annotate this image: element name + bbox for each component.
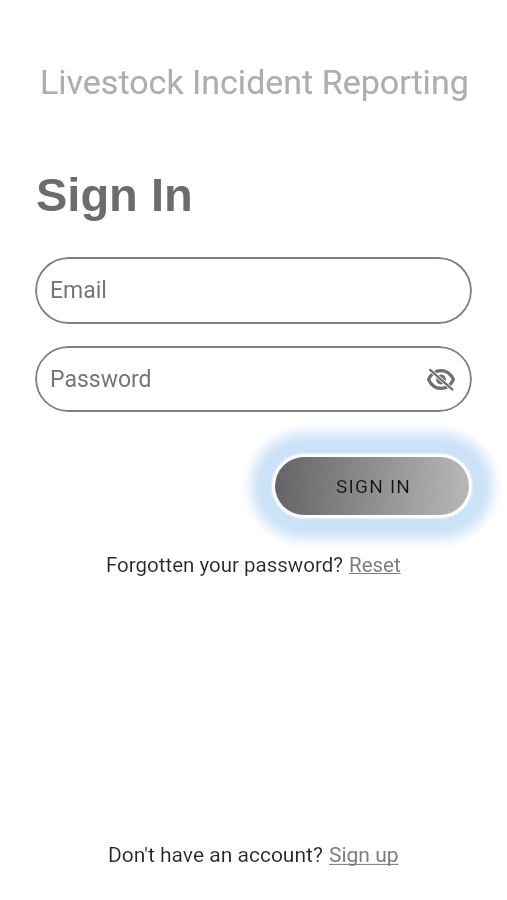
button[interactable]: Show password bbox=[420, 358, 462, 400]
staticText: Sign In bbox=[36, 168, 193, 221]
button[interactable]: SIGN IN bbox=[275, 457, 469, 515]
staticText: Forgotten your password? bbox=[106, 553, 349, 577]
staticText: Don't have an account? bbox=[108, 843, 329, 868]
button[interactable]: Reset bbox=[349, 553, 401, 577]
staticText: Email bbox=[50, 277, 107, 304]
button[interactable]: Sign up bbox=[329, 843, 399, 868]
staticText: Livestock Incident Reporting bbox=[40, 62, 469, 102]
button[interactable]: Password bbox=[35, 346, 472, 412]
staticText: SIGN IN bbox=[336, 475, 412, 497]
staticText: Password bbox=[50, 366, 152, 393]
button[interactable]: Email bbox=[35, 257, 472, 324]
staticText: Reset bbox=[349, 553, 401, 577]
staticText: Sign up bbox=[329, 843, 399, 868]
